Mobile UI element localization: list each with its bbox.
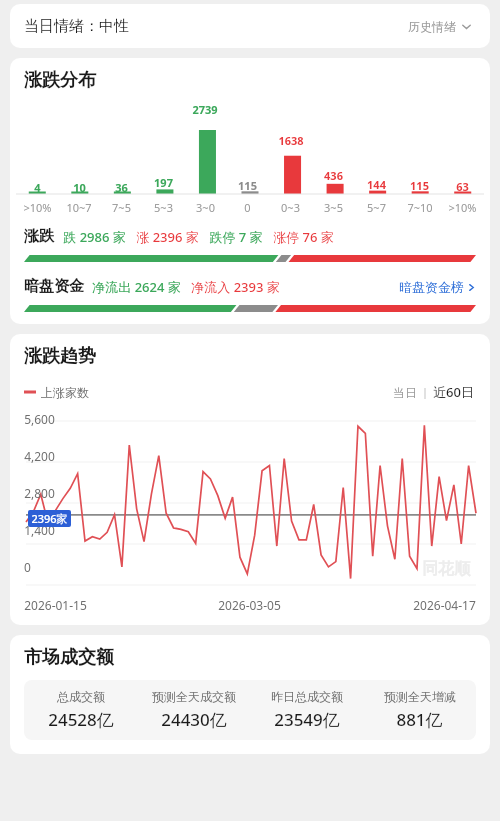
staticText: 36 bbox=[115, 180, 128, 195]
staticText: 2026-01-15 bbox=[24, 597, 87, 613]
staticText: 5~3 bbox=[154, 200, 173, 215]
button[interactable]: 当日 bbox=[391, 383, 419, 402]
staticText: 暗盘资金 bbox=[24, 277, 84, 296]
staticText: 涨跌 bbox=[24, 227, 54, 246]
staticText: 2026-03-05 bbox=[218, 597, 281, 613]
staticText: 跌停 7 家 bbox=[209, 228, 263, 246]
staticText: 净流出 2624 家 bbox=[92, 278, 181, 296]
staticText: 2026-04-17 bbox=[413, 597, 476, 613]
staticText: 10~7 bbox=[66, 200, 92, 215]
staticText: 197 bbox=[154, 175, 173, 190]
staticText: 7~10 bbox=[407, 200, 433, 215]
staticText: 2396家 bbox=[31, 511, 68, 526]
staticText: 涨跌分布 bbox=[24, 69, 96, 92]
staticText: 历史情绪 bbox=[408, 19, 456, 34]
staticText: 涨 2396 家 bbox=[136, 228, 199, 246]
staticText: 0 bbox=[24, 559, 31, 575]
staticText: 4 bbox=[34, 180, 41, 195]
staticText: 3~0 bbox=[196, 200, 215, 215]
staticText: >10% bbox=[23, 200, 52, 215]
staticText: 2739 bbox=[192, 102, 218, 117]
staticText: 881亿 bbox=[396, 708, 443, 731]
staticText: 同花顺 bbox=[422, 559, 470, 579]
staticText: 0~3 bbox=[281, 200, 300, 215]
staticText: 当日 bbox=[393, 385, 417, 400]
staticText: 涨停 76 家 bbox=[273, 228, 334, 246]
staticText: 115 bbox=[238, 178, 257, 193]
staticText: 2,800 bbox=[24, 485, 55, 501]
staticText: 总成交额 bbox=[57, 689, 105, 704]
staticText: 63 bbox=[456, 179, 469, 194]
staticText: 7~5 bbox=[112, 200, 131, 215]
staticText: 5~7 bbox=[367, 200, 386, 215]
button[interactable]: 涨跌 bbox=[10, 227, 490, 246]
staticText: 10 bbox=[73, 180, 86, 195]
staticText: 5,600 bbox=[24, 411, 55, 427]
staticText: 3~5 bbox=[324, 200, 343, 215]
staticText: 4,200 bbox=[24, 448, 55, 464]
staticText: 1,400 bbox=[24, 522, 55, 538]
staticText: >10% bbox=[448, 200, 477, 215]
staticText: | bbox=[422, 385, 428, 399]
staticText: 暗盘资金榜 bbox=[399, 279, 464, 295]
staticText: 市场成交额 bbox=[24, 646, 114, 669]
button[interactable]: 近60日 bbox=[431, 381, 476, 403]
staticText: 涨跌趋势 bbox=[24, 345, 96, 368]
button[interactable]: 暗盘资金榜 bbox=[399, 279, 476, 295]
button[interactable]: 历史情绪 bbox=[404, 15, 476, 38]
staticText: 144 bbox=[367, 177, 386, 192]
staticText: 24430亿 bbox=[161, 708, 227, 731]
staticText: 上涨家数 bbox=[41, 385, 89, 400]
staticText: 净流入 2393 家 bbox=[191, 278, 280, 296]
staticText: 当日情绪：中性 bbox=[24, 17, 129, 36]
staticText: 23549亿 bbox=[274, 708, 340, 731]
staticText: 436 bbox=[324, 168, 343, 183]
staticText: 跌 2986 家 bbox=[63, 228, 126, 246]
staticText: 昨日总成交额 bbox=[271, 689, 343, 704]
staticText: 115 bbox=[410, 178, 429, 193]
staticText: 24528亿 bbox=[48, 708, 114, 731]
staticText: 预测全天增减 bbox=[384, 689, 456, 704]
staticText: 预测全天成交额 bbox=[152, 689, 236, 704]
staticText: 近60日 bbox=[433, 383, 474, 401]
staticText: 1638 bbox=[278, 133, 304, 148]
staticText: 0 bbox=[244, 200, 251, 215]
